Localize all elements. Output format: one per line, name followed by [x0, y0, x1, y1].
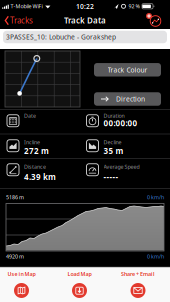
staticText: Distance	[24, 163, 46, 170]
staticText: 3PASSES_10: Lobuche - Gorakshep	[6, 33, 116, 41]
button[interactable]: Share + Email	[113, 267, 163, 300]
staticText: Tracks	[10, 15, 33, 26]
staticText: 0 km/h	[147, 253, 164, 260]
button[interactable]: Tracks	[0, 12, 34, 29]
staticText: Load Map	[67, 270, 91, 278]
staticText: 10:22	[76, 2, 94, 11]
staticText: Track Data	[64, 15, 106, 26]
staticText: 92 %	[128, 3, 139, 10]
staticText: 00:00:00	[103, 118, 137, 128]
staticText: Incline	[24, 139, 40, 146]
staticText: Track Colour	[107, 65, 147, 74]
staticText: -----	[103, 171, 118, 182]
button[interactable]: Direction	[94, 92, 161, 106]
staticText: 272 m	[24, 146, 49, 156]
staticText: Decline	[103, 139, 121, 146]
staticText: Date	[24, 112, 36, 119]
button[interactable]: Track Colour	[94, 63, 161, 76]
staticText: Use in Map	[7, 270, 35, 278]
staticText: 4920 m	[6, 253, 24, 260]
staticText: Direction	[116, 95, 145, 103]
button[interactable]	[139, 8, 163, 32]
staticText: Share + Email	[121, 270, 155, 278]
button[interactable]: Load Map	[54, 267, 104, 300]
staticText: 0 km/h	[147, 194, 164, 201]
staticText: 5186 m	[6, 194, 24, 201]
staticText: 35 m	[103, 146, 123, 156]
staticText: T-Mobile WiFi	[10, 3, 42, 10]
staticText: Duration	[103, 112, 124, 119]
button[interactable]: Use in Map	[0, 267, 46, 300]
staticText: 4.39 km	[24, 171, 56, 182]
staticText: Average Speed	[103, 163, 139, 170]
